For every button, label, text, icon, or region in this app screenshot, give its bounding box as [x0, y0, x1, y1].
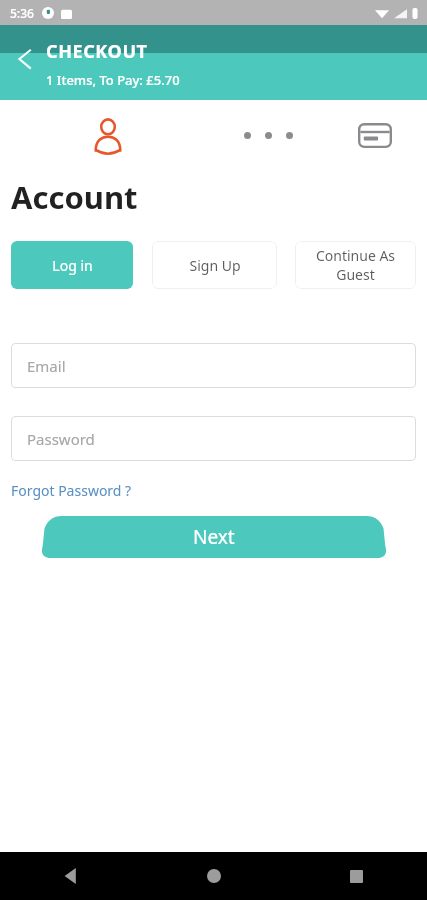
button[interactable]: Next	[0, 516, 427, 558]
button[interactable]: Password	[11, 416, 416, 461]
button[interactable]: Sign Up	[152, 241, 277, 289]
button[interactable]: Back	[49, 854, 93, 898]
button[interactable]: Continue As Guest	[295, 241, 416, 289]
staticText: Next	[193, 524, 235, 550]
staticText: Continue As Guest	[301, 246, 410, 284]
staticText: Sign Up	[189, 256, 241, 275]
staticText: Password	[27, 429, 95, 449]
staticText: Email	[27, 356, 66, 376]
staticText: Forgot Password ?	[11, 481, 132, 500]
staticText: 5:36	[10, 5, 34, 21]
button[interactable]: Payment step	[322, 100, 427, 170]
button[interactable]: Back	[4, 37, 48, 81]
button[interactable]: Forgot Password ?	[11, 481, 132, 500]
staticText: Log in	[52, 256, 93, 275]
staticText: 1 Items, To Pay: £5.70	[46, 71, 180, 89]
button[interactable]: Home	[192, 854, 236, 898]
staticText: CHECKOUT	[46, 39, 148, 64]
staticText: Account	[11, 176, 138, 218]
button[interactable]: Recent apps	[334, 854, 378, 898]
button[interactable]: Email	[11, 343, 416, 388]
button[interactable]: Log in	[11, 241, 133, 289]
button[interactable]: Account step	[0, 100, 215, 170]
